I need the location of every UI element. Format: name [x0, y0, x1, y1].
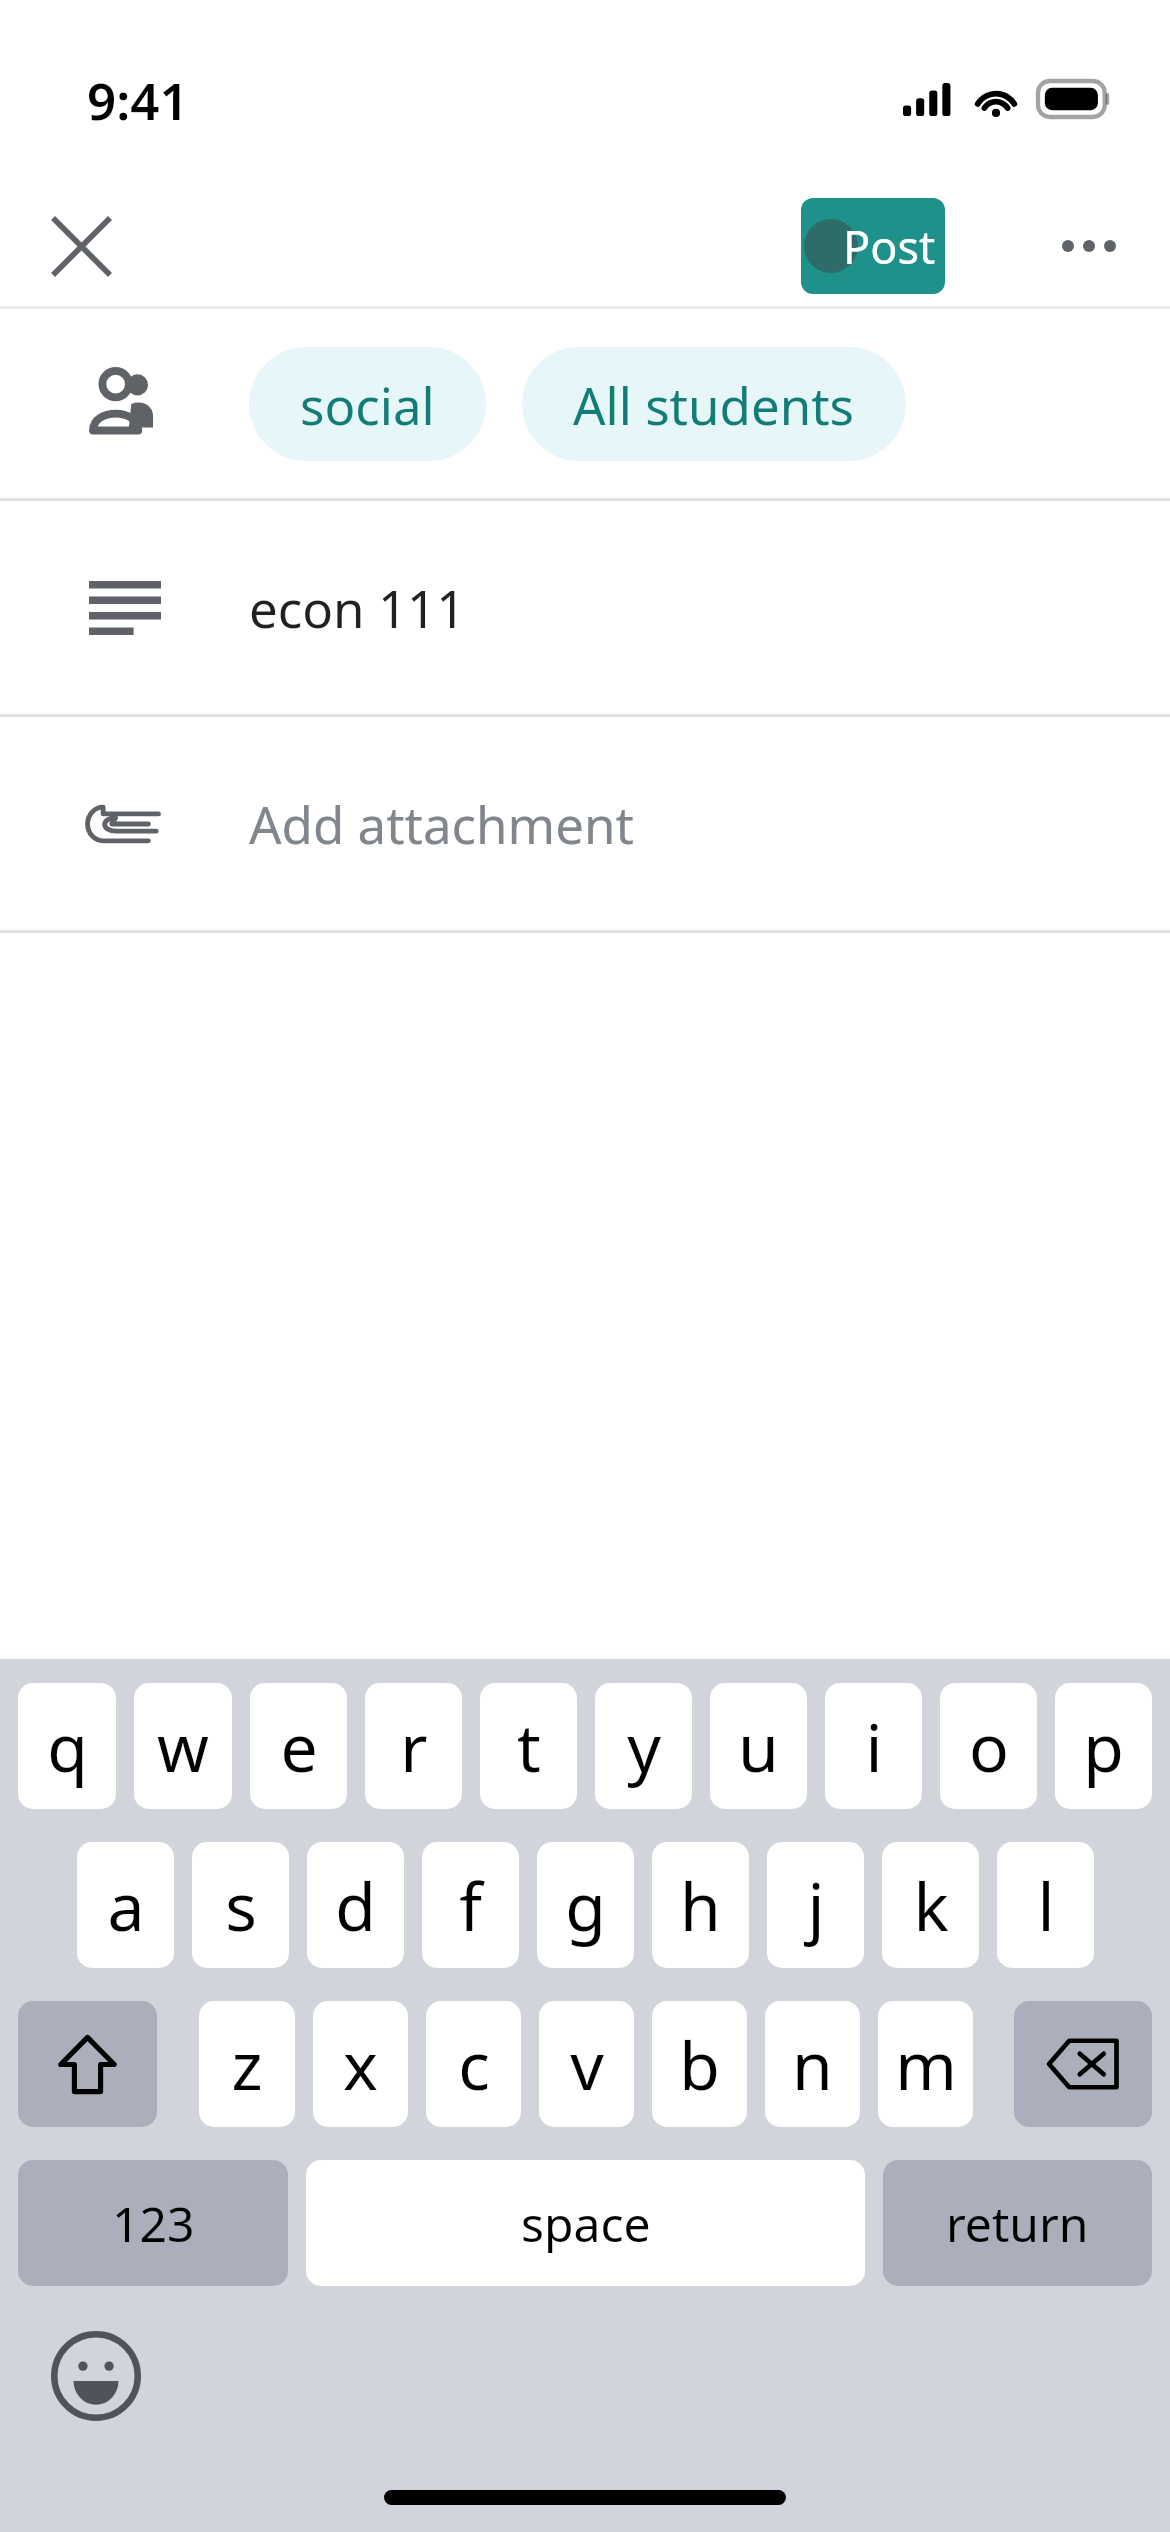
button[interactable]: o: [940, 1683, 1037, 1809]
button[interactable]: social: [0, 309, 1170, 498]
button[interactable]: k: [882, 1842, 979, 1968]
button[interactable]: Shift: [18, 2001, 157, 2127]
staticText: x: [343, 2019, 378, 2109]
staticText: j: [807, 1860, 825, 1950]
staticText: s: [225, 1860, 257, 1950]
staticText: w: [157, 1701, 209, 1791]
button[interactable]: l: [997, 1842, 1094, 1968]
staticText: 123: [112, 2191, 195, 2256]
button[interactable]: z: [199, 2001, 295, 2127]
button[interactable]: social: [249, 347, 486, 461]
button[interactable]: f: [422, 1842, 519, 1968]
staticText: q: [47, 1701, 88, 1791]
staticText: e: [280, 1701, 318, 1791]
staticText: return: [946, 2191, 1089, 2256]
button[interactable]: Post: [801, 198, 945, 294]
button[interactable]: m: [878, 2001, 973, 2127]
button[interactable]: All students: [522, 347, 906, 461]
staticText: o: [969, 1701, 1009, 1791]
button[interactable]: i: [825, 1683, 922, 1809]
staticText: g: [565, 1860, 606, 1950]
staticText: p: [1083, 1701, 1124, 1791]
button[interactable]: Close: [15, 186, 147, 306]
staticText: h: [680, 1860, 721, 1950]
staticText: k: [913, 1860, 949, 1950]
button[interactable]: p: [1055, 1683, 1152, 1809]
staticText: All students: [573, 370, 855, 439]
button[interactable]: space: [306, 2160, 865, 2286]
button[interactable]: Emoji: [33, 2313, 159, 2439]
button[interactable]: n: [765, 2001, 860, 2127]
button[interactable]: econ 111: [0, 501, 1170, 714]
staticText: n: [792, 2019, 833, 2109]
staticText: f: [459, 1860, 482, 1950]
button[interactable]: v: [539, 2001, 634, 2127]
button[interactable]: y: [595, 1683, 692, 1809]
button[interactable]: q: [18, 1683, 116, 1809]
button[interactable]: g: [537, 1842, 634, 1968]
button[interactable]: More options: [1023, 186, 1155, 306]
button[interactable]: x: [313, 2001, 408, 2127]
button[interactable]: 123: [18, 2160, 288, 2286]
button[interactable]: Add attachment: [0, 717, 1170, 930]
staticText: d: [335, 1860, 376, 1950]
button[interactable]: b: [652, 2001, 747, 2127]
staticText: social: [300, 370, 435, 439]
staticText: i: [865, 1701, 883, 1791]
button[interactable]: r: [365, 1683, 462, 1809]
button[interactable]: c: [426, 2001, 521, 2127]
staticText: Post: [843, 216, 936, 277]
staticText: r: [400, 1701, 428, 1791]
staticText: a: [107, 1860, 145, 1950]
button[interactable]: t: [480, 1683, 577, 1809]
button[interactable]: e: [250, 1683, 347, 1809]
staticText: m: [895, 2019, 957, 2109]
staticText: y: [627, 1701, 661, 1791]
staticText: b: [679, 2019, 720, 2109]
staticText: v: [570, 2019, 604, 2109]
staticText: Add attachment: [249, 789, 634, 858]
staticText: space: [521, 2191, 651, 2256]
button[interactable]: h: [652, 1842, 749, 1968]
staticText: l: [1037, 1860, 1055, 1950]
button[interactable]: j: [767, 1842, 864, 1968]
staticText: c: [458, 2019, 490, 2109]
button[interactable]: w: [134, 1683, 232, 1809]
staticText: u: [738, 1701, 779, 1791]
button[interactable]: s: [192, 1842, 289, 1968]
staticText: z: [231, 2019, 263, 2109]
button[interactable]: Backspace: [1014, 2001, 1152, 2127]
staticText: 9:41: [87, 65, 189, 134]
button[interactable]: a: [77, 1842, 174, 1968]
staticText: t: [517, 1701, 541, 1791]
button[interactable]: d: [307, 1842, 404, 1968]
staticText: econ 111: [249, 573, 466, 642]
button[interactable]: u: [710, 1683, 807, 1809]
button[interactable]: return: [883, 2160, 1152, 2286]
